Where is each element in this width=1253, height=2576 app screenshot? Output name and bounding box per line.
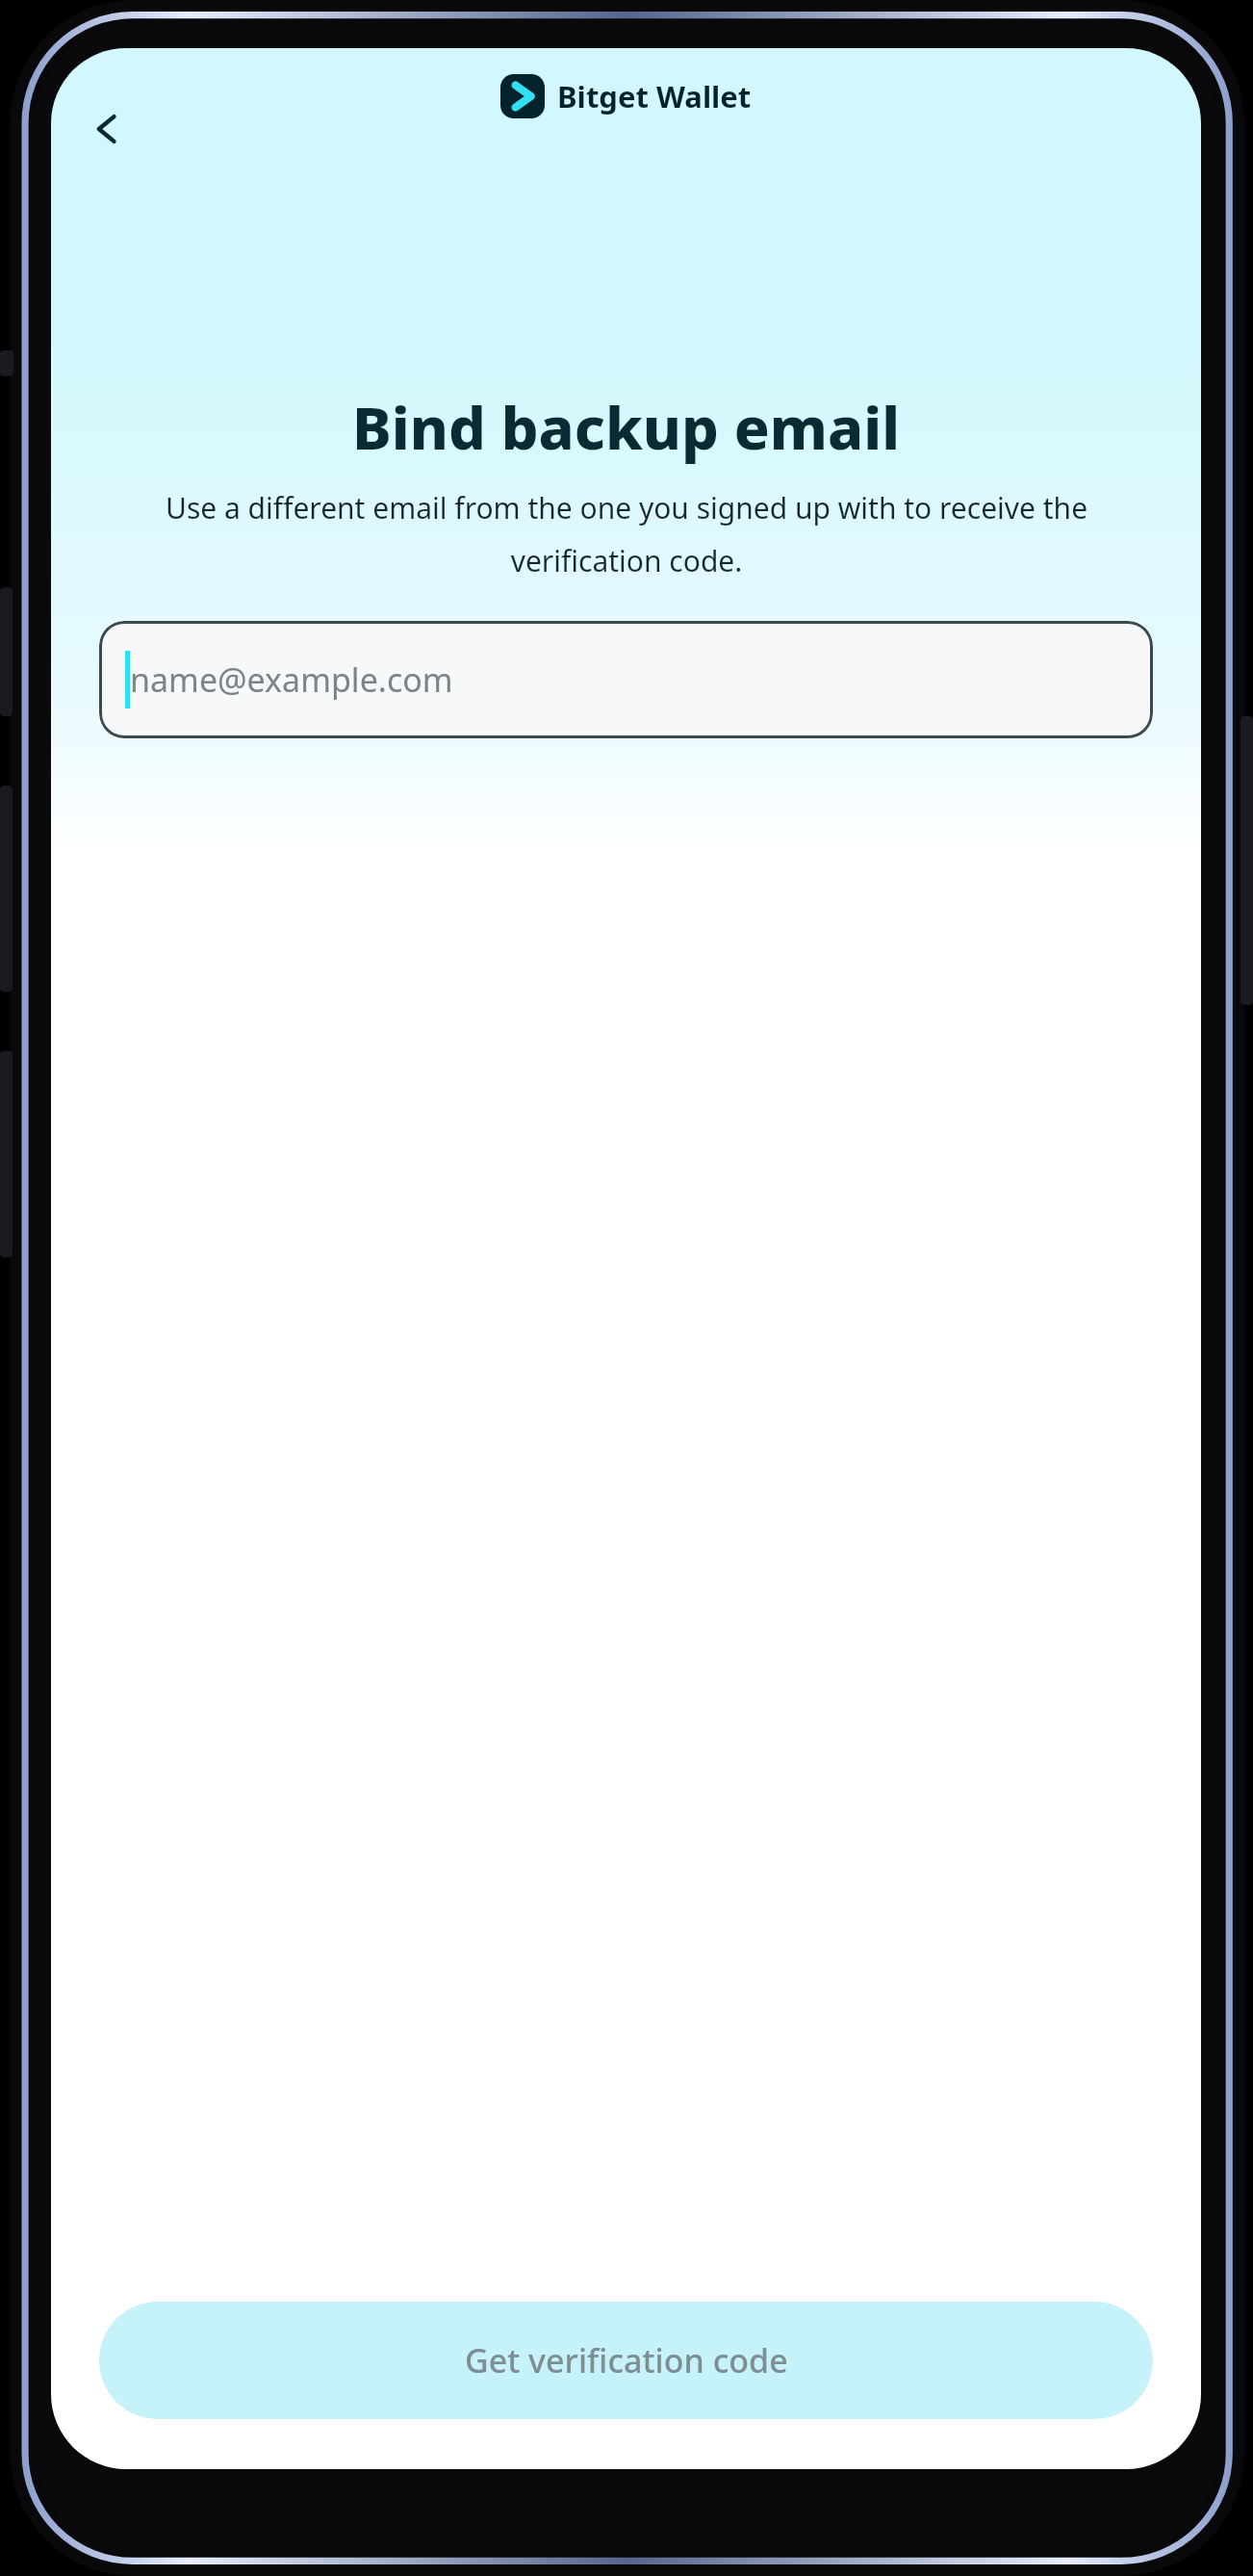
button[interactable]: Get verification code <box>99 2302 1153 2419</box>
staticText: Bind backup email <box>352 387 900 467</box>
button[interactable]: name@example.com <box>99 621 1153 738</box>
button[interactable]: Back <box>72 94 141 164</box>
staticText: Get verification code <box>465 2338 788 2383</box>
staticText: Bitget Wallet <box>557 76 752 116</box>
staticText: name@example.com <box>130 657 453 702</box>
staticText: Use a different email from the one you s… <box>141 488 1112 580</box>
